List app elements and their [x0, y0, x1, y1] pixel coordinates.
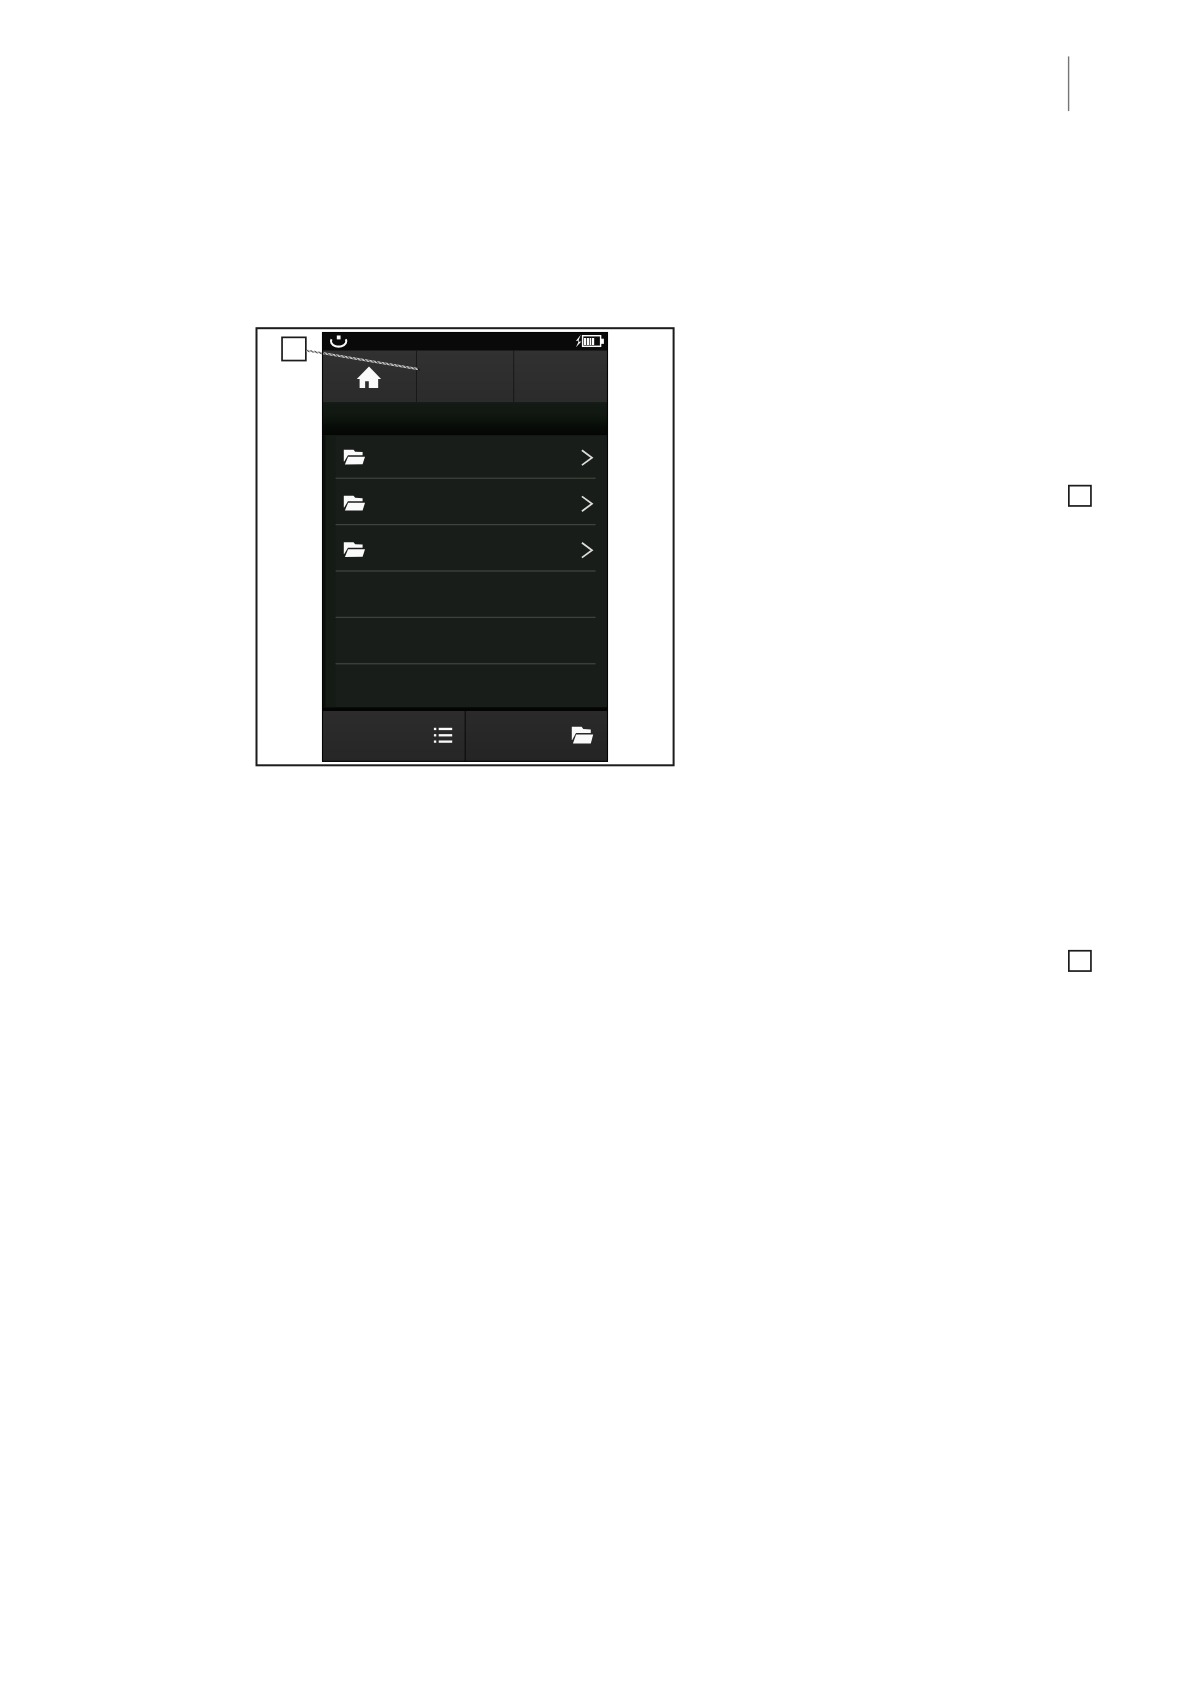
button[interactable]: Favourites tab	[514, 351, 608, 403]
button[interactable]: Open folder, first item	[322, 435, 608, 478]
button[interactable]: Home tab	[322, 351, 417, 403]
button[interactable]: Open folder, third item	[322, 525, 608, 571]
button[interactable]: List item, fifth	[322, 617, 608, 664]
button[interactable]: Show as list	[322, 711, 465, 762]
button[interactable]: Recent tab	[417, 351, 514, 403]
button[interactable]: Show folders	[465, 711, 608, 762]
button[interactable]: List item, fourth	[322, 571, 608, 617]
button[interactable]: Open folder, second item	[322, 478, 608, 525]
button[interactable]: List item, sixth	[322, 664, 608, 708]
